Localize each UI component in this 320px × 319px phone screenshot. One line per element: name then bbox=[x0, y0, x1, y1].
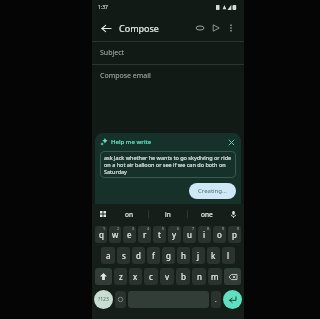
staticText: in bbox=[165, 210, 171, 219]
staticText: e bbox=[127, 229, 132, 240]
staticText: l bbox=[227, 250, 230, 261]
button[interactable]: w bbox=[109, 226, 121, 243]
button[interactable]: Attach file bbox=[192, 20, 208, 36]
button[interactable]: p bbox=[228, 226, 241, 243]
staticText: j bbox=[197, 250, 200, 261]
staticText: 6 bbox=[177, 226, 180, 231]
button[interactable]: Voice input bbox=[226, 207, 240, 221]
staticText: v bbox=[165, 271, 170, 282]
button[interactable]: v bbox=[160, 268, 174, 285]
button[interactable]: Emoji bbox=[115, 291, 126, 308]
staticText: 1 bbox=[103, 226, 106, 231]
staticText: 5 bbox=[162, 226, 165, 231]
staticText: 9 bbox=[222, 226, 225, 231]
staticText: r bbox=[143, 229, 147, 240]
button[interactable]: Backspace bbox=[224, 268, 241, 285]
button[interactable]: Send bbox=[208, 20, 224, 36]
button[interactable]: b bbox=[176, 268, 190, 285]
button[interactable]: Back bbox=[98, 20, 114, 36]
button[interactable]: Subject bbox=[92, 42, 244, 64]
staticText: 8 bbox=[207, 226, 210, 231]
staticText: y bbox=[172, 229, 177, 240]
staticText: m bbox=[211, 271, 219, 282]
button[interactable]: o bbox=[213, 226, 226, 243]
staticText: d bbox=[136, 250, 141, 261]
button[interactable]: More options bbox=[224, 21, 238, 35]
staticText: 2 bbox=[117, 226, 120, 231]
button[interactable]: in bbox=[149, 204, 187, 224]
button[interactable]: q bbox=[95, 226, 107, 243]
staticText: Creating... bbox=[198, 187, 227, 195]
button[interactable]: Compose email bbox=[92, 65, 244, 87]
button[interactable]: s bbox=[117, 247, 130, 264]
staticText: g bbox=[166, 250, 171, 261]
button[interactable]: h bbox=[177, 247, 190, 264]
staticText: h bbox=[181, 250, 186, 261]
button[interactable]: j bbox=[192, 247, 205, 264]
button[interactable]: x bbox=[129, 268, 142, 285]
staticText: on bbox=[125, 210, 133, 219]
staticText: 1:37 bbox=[98, 4, 108, 11]
button[interactable]: r bbox=[138, 226, 151, 243]
staticText: t bbox=[158, 229, 161, 240]
staticText: 0 bbox=[237, 226, 240, 231]
button[interactable]: Creating... bbox=[189, 183, 236, 199]
button[interactable]: ask Jack whether he wants to go skydivin… bbox=[100, 151, 236, 178]
staticText: 3 bbox=[132, 226, 135, 231]
staticText: ask Jack whether he wants to go skydivin… bbox=[104, 154, 232, 175]
button[interactable]: Enter bbox=[223, 290, 242, 309]
button[interactable]: t bbox=[153, 226, 166, 243]
staticText: s bbox=[122, 250, 126, 261]
staticText: . bbox=[215, 296, 217, 304]
button[interactable]: a bbox=[101, 247, 115, 264]
button[interactable]: d bbox=[132, 247, 145, 264]
staticText: Compose email bbox=[100, 71, 151, 81]
staticText: i bbox=[203, 229, 206, 240]
button[interactable]: f bbox=[147, 247, 160, 264]
button[interactable]: m bbox=[208, 268, 222, 285]
staticText: Help me write bbox=[111, 138, 152, 146]
button[interactable]: z bbox=[114, 268, 127, 285]
staticText: p bbox=[232, 229, 237, 240]
staticText: 4 bbox=[147, 226, 150, 231]
button[interactable]: n bbox=[192, 268, 206, 285]
button[interactable]: on bbox=[110, 204, 148, 224]
button[interactable]: one bbox=[188, 204, 226, 224]
staticText: q bbox=[99, 229, 104, 240]
button[interactable]: Toolbar bbox=[96, 207, 110, 221]
button[interactable]: . bbox=[211, 291, 221, 308]
button[interactable]: c bbox=[144, 268, 158, 285]
staticText: Subject bbox=[100, 48, 125, 58]
staticText: ?123 bbox=[98, 296, 109, 303]
staticText: n bbox=[197, 271, 202, 282]
staticText: o bbox=[217, 229, 222, 240]
staticText: 7 bbox=[192, 226, 195, 231]
staticText: b bbox=[181, 271, 186, 282]
staticText: z bbox=[119, 271, 123, 282]
button[interactable]: g bbox=[162, 247, 175, 264]
staticText: a bbox=[106, 250, 111, 261]
staticText: Compose bbox=[119, 22, 159, 34]
button[interactable]: y bbox=[168, 226, 181, 243]
button[interactable]: k bbox=[207, 247, 220, 264]
button[interactable]: Close bbox=[226, 137, 236, 147]
button[interactable]: Shift bbox=[95, 268, 112, 285]
staticText: f bbox=[152, 250, 155, 261]
staticText: w bbox=[112, 229, 119, 240]
staticText: one bbox=[201, 210, 213, 219]
button[interactable]: ?123 bbox=[94, 290, 113, 309]
staticText: x bbox=[133, 271, 138, 282]
button[interactable]: i bbox=[198, 226, 211, 243]
staticText: k bbox=[211, 250, 216, 261]
button[interactable]: u bbox=[183, 226, 196, 243]
button[interactable]: l bbox=[222, 247, 235, 264]
staticText: u bbox=[187, 229, 192, 240]
button[interactable]: e bbox=[123, 226, 136, 243]
staticText: c bbox=[149, 271, 153, 282]
